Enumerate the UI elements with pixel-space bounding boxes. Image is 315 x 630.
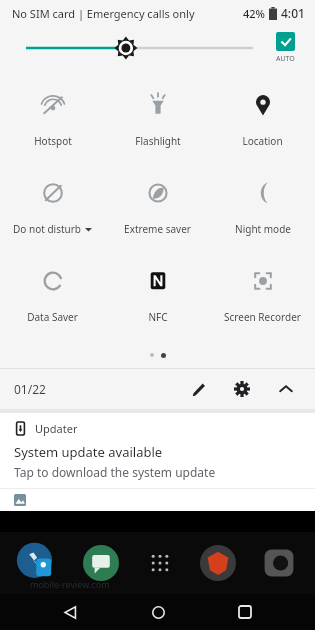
button[interactable]: Flashlight (105, 78, 210, 166)
button[interactable]: Screen Recorder (210, 254, 315, 342)
button[interactable]: NFC (105, 254, 210, 342)
staticText: Hotspot (34, 134, 72, 148)
staticText: Screen Recorder (224, 310, 301, 324)
button[interactable]: Home (140, 594, 176, 630)
button[interactable]: Edit (183, 374, 213, 404)
staticText: Flashlight (135, 134, 181, 148)
staticText: 4:01 (281, 5, 305, 21)
button[interactable]: Data Saver (0, 254, 105, 342)
button[interactable]: Phone (16, 541, 60, 585)
staticText: Tap to download the system update (14, 464, 216, 480)
button[interactable]: Back (52, 594, 88, 630)
staticText: No SIM card | Emergency calls only (12, 6, 195, 21)
button[interactable]: Collapse (271, 374, 301, 404)
staticText: NFC (148, 310, 168, 324)
button[interactable]: Recent apps (227, 594, 263, 630)
staticText: Data Saver (27, 310, 78, 324)
button[interactable]: Extreme saver (105, 166, 210, 254)
button[interactable] (26, 31, 253, 65)
staticText: mobile-review.com (30, 578, 110, 590)
button[interactable]: Brave browser (198, 543, 238, 583)
staticText: Extreme saver (124, 222, 191, 236)
staticText: Location (242, 134, 283, 148)
button[interactable]: Camera (259, 543, 299, 583)
staticText: Night mode (235, 222, 291, 236)
button[interactable] (0, 489, 315, 511)
button[interactable]: Messages (81, 543, 121, 583)
button[interactable]: AUTO (265, 32, 305, 64)
button[interactable]: Location (210, 78, 315, 166)
staticText: 42% (243, 6, 265, 21)
button[interactable]: Do not disturb (0, 166, 105, 254)
staticText: 01/22 (14, 381, 46, 397)
button[interactable]: Settings (227, 374, 257, 404)
button[interactable]: Hotspot (0, 78, 105, 166)
button[interactable]: Night mode (210, 166, 315, 254)
staticText: System update available (14, 443, 163, 461)
staticText: Updater (35, 421, 78, 436)
staticText: AUTO (276, 54, 295, 64)
button[interactable]: Updater (0, 413, 315, 488)
button[interactable]: All apps (143, 546, 177, 580)
staticText: Do not disturb (13, 222, 81, 236)
